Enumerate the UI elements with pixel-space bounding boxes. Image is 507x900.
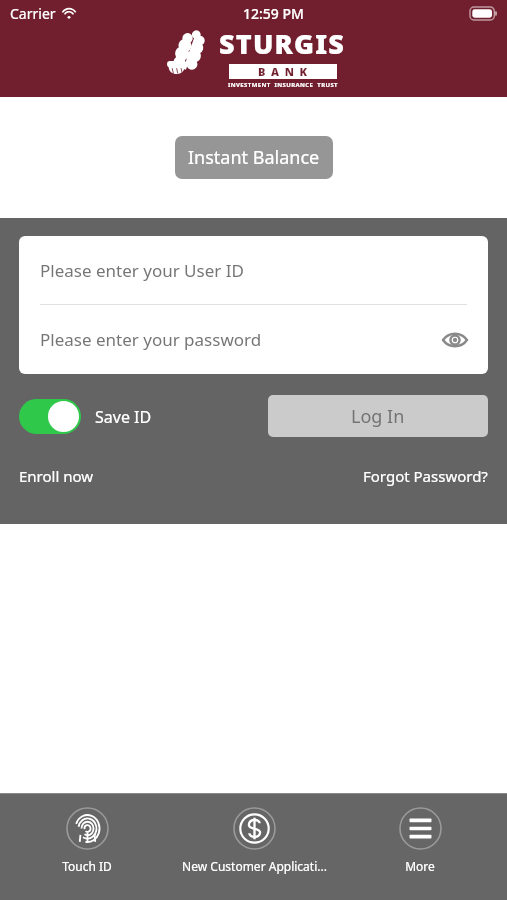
staticText: Log In <box>351 404 405 429</box>
button[interactable]: More <box>340 794 500 874</box>
button[interactable]: Instant Balance <box>175 136 333 179</box>
staticText: Forgot Password? <box>363 466 488 486</box>
button[interactable]: Save ID <box>19 399 152 434</box>
button[interactable]: Please enter your password <box>19 305 488 374</box>
staticText: More <box>405 858 435 874</box>
staticText: New Customer Applicati... <box>182 858 327 874</box>
staticText: 12:59 PM <box>243 4 304 23</box>
button[interactable]: Touch ID <box>7 794 167 874</box>
button[interactable]: New Customer Application <box>174 794 334 874</box>
staticText: STURGIS <box>219 25 346 62</box>
staticText: Save ID <box>95 406 152 428</box>
staticText: Enroll now <box>19 466 94 486</box>
staticText: Please enter your User ID <box>40 259 244 282</box>
staticText: B A N K <box>258 64 309 79</box>
staticText: Please enter your password <box>40 328 262 351</box>
staticText: Carrier <box>10 4 56 23</box>
button[interactable]: Please enter your User ID <box>19 236 488 304</box>
staticText: Instant Balance <box>188 145 320 170</box>
staticText: Touch ID <box>62 858 112 874</box>
button[interactable]: Log In <box>268 395 488 437</box>
staticText: INVESTMENT INSURANCE TRUST <box>228 81 338 89</box>
button[interactable]: Forgot Password? <box>363 466 488 486</box>
button[interactable]: Show password <box>440 325 470 355</box>
button[interactable]: Enroll now <box>19 466 94 486</box>
